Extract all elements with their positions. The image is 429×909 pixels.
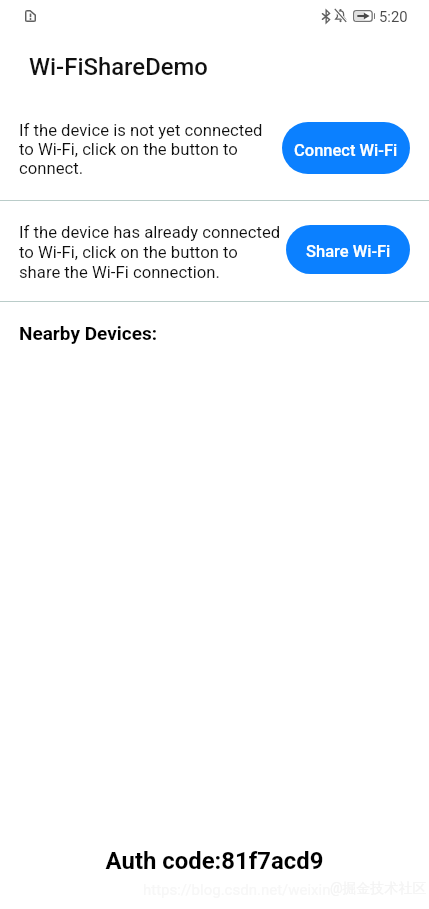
other: SIM card alert <box>25 10 36 22</box>
staticText: Wi-FiShareDemo <box>29 53 208 81</box>
other: Battery charging <box>353 10 375 22</box>
button[interactable]: Connect Wi-Fi <box>282 122 410 174</box>
button[interactable]: Share Wi-Fi <box>286 225 410 274</box>
other: Notifications off <box>335 9 346 22</box>
staticText: If the device is not yet connected to Wi… <box>19 121 287 178</box>
staticText: Auth code:81f7acd9 <box>0 847 429 875</box>
staticText: Share Wi-Fi <box>306 242 391 261</box>
staticText: @掘金技术社区 <box>330 880 427 898</box>
staticText: Nearby Devices: <box>19 322 158 344</box>
staticText: Connect Wi-Fi <box>294 141 398 160</box>
staticText: 5:20 <box>379 8 408 25</box>
staticText: If the device has already connected to W… <box>19 223 295 283</box>
other: Bluetooth <box>322 10 330 23</box>
